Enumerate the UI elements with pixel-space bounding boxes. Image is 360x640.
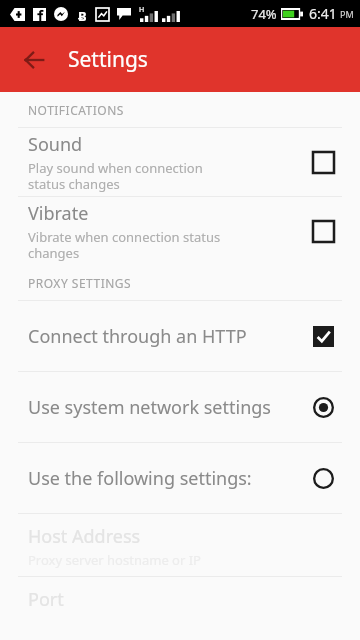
staticText: PROXY SETTINGS bbox=[28, 275, 132, 291]
staticText: H bbox=[139, 5, 145, 15]
button[interactable]: Not selected bbox=[304, 459, 342, 497]
staticText: PM bbox=[340, 8, 354, 20]
button[interactable]: Unchecked bbox=[304, 143, 342, 181]
button[interactable]: Unchecked bbox=[304, 212, 342, 250]
staticText: NOTIFICATIONS bbox=[28, 102, 124, 118]
button[interactable]: Sound bbox=[0, 128, 360, 196]
staticText: Use the following settings: bbox=[28, 466, 298, 491]
staticText: Port bbox=[28, 587, 64, 612]
staticText: 74% bbox=[251, 5, 277, 23]
staticText: Vibrate bbox=[28, 201, 89, 226]
staticText: Host Address bbox=[28, 524, 141, 549]
button[interactable]: Back bbox=[12, 38, 56, 82]
staticText: Play sound when connection status change… bbox=[28, 159, 203, 192]
staticText: Settings bbox=[68, 45, 148, 74]
staticText: Connect through an HTTP bbox=[28, 324, 298, 349]
staticText: Ƀ bbox=[78, 7, 87, 21]
button[interactable]: Use system network settings bbox=[0, 372, 360, 442]
button[interactable]: Selected bbox=[304, 388, 342, 426]
button[interactable]: Use the following settings: bbox=[0, 443, 360, 513]
staticText: Proxy server hostname or IP bbox=[28, 551, 201, 569]
button[interactable]: Connect through an HTTP bbox=[0, 301, 360, 371]
staticText: 6:41 bbox=[309, 4, 337, 23]
staticText: Sound bbox=[28, 132, 83, 157]
staticText: Vibrate when connection status changes bbox=[28, 228, 221, 261]
button[interactable]: Checked bbox=[304, 317, 342, 355]
button[interactable]: Vibrate bbox=[0, 197, 360, 265]
staticText: Use system network settings bbox=[28, 395, 298, 420]
